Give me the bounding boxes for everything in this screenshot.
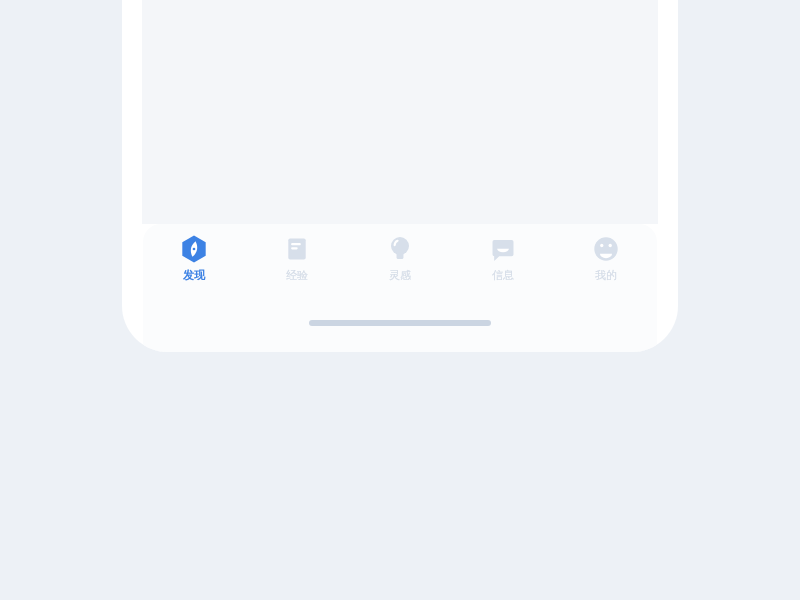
staticText: 灵感	[389, 268, 411, 282]
staticText: 信息	[492, 268, 514, 282]
button[interactable]: 发现	[143, 232, 245, 284]
button[interactable]: 我的	[554, 232, 657, 284]
button[interactable]: 经验	[245, 232, 348, 284]
button[interactable]: 灵感	[348, 232, 451, 284]
button[interactable]: 信息	[451, 232, 554, 284]
staticText: 我的	[595, 268, 617, 282]
staticText: 经验	[286, 268, 308, 282]
staticText: 发现	[183, 268, 205, 282]
